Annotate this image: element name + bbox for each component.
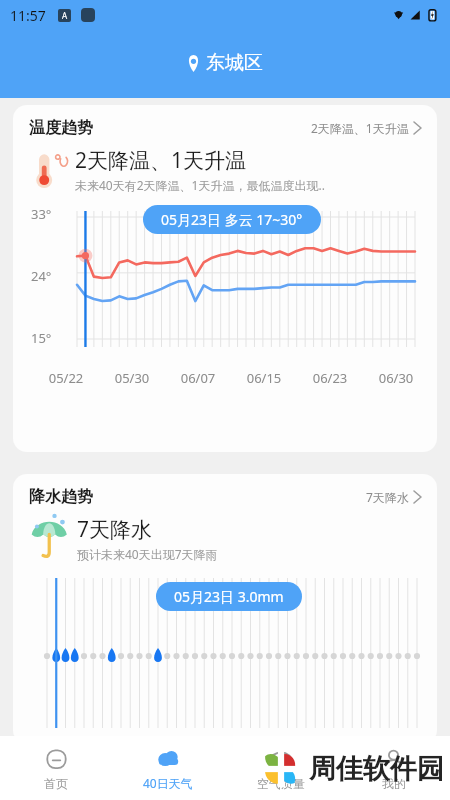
staticText: 降水趋势	[29, 487, 93, 507]
button[interactable]: 05月23日 3.0mm	[156, 582, 302, 611]
button[interactable]: 7天降水	[366, 489, 421, 505]
staticText: 预计未来40天出现7天降雨	[77, 546, 218, 562]
staticText: 我的	[382, 776, 406, 791]
staticText: 7天降水	[366, 489, 409, 505]
staticText: 06/23	[297, 369, 363, 387]
staticText: 7天降水	[77, 515, 153, 544]
button[interactable]: 05月23日 多云 17~30°	[143, 205, 321, 234]
staticText: 05月23日 多云 17~30°	[161, 210, 303, 229]
staticText: 未来40天有2天降温、1天升温，最低温度出现..	[75, 177, 325, 193]
staticText: A	[62, 10, 68, 21]
staticText: 05/22	[33, 369, 99, 387]
staticText: 33°	[31, 205, 52, 223]
staticText: 2天降温、1天升温	[311, 120, 409, 136]
button[interactable]: 空气质量	[224, 736, 337, 800]
staticText: 东城区	[206, 51, 263, 75]
staticText: 周佳软件园	[309, 752, 444, 786]
button[interactable]: 40日天气	[112, 736, 224, 800]
staticText: 11:57	[10, 6, 46, 25]
staticText: 05月23日 3.0mm	[174, 587, 284, 606]
staticText: 24°	[31, 267, 52, 285]
staticText: 06/30	[363, 369, 429, 387]
button[interactable]: 东城区	[187, 51, 263, 75]
staticText: 温度趋势	[29, 118, 93, 138]
staticText: 空气质量	[257, 776, 305, 791]
staticText: 06/15	[231, 369, 297, 387]
staticText: 06/07	[165, 369, 231, 387]
staticText: 15°	[31, 329, 52, 347]
staticText: 首页	[44, 776, 68, 791]
staticText: 40日天气	[143, 775, 193, 791]
staticText: 05/30	[99, 369, 165, 387]
button[interactable]: 2天降温、1天升温	[311, 120, 421, 136]
button[interactable]: 首页	[0, 736, 112, 800]
staticText: 2天降温、1天升温	[75, 146, 247, 175]
button[interactable]: 我的	[337, 736, 450, 800]
